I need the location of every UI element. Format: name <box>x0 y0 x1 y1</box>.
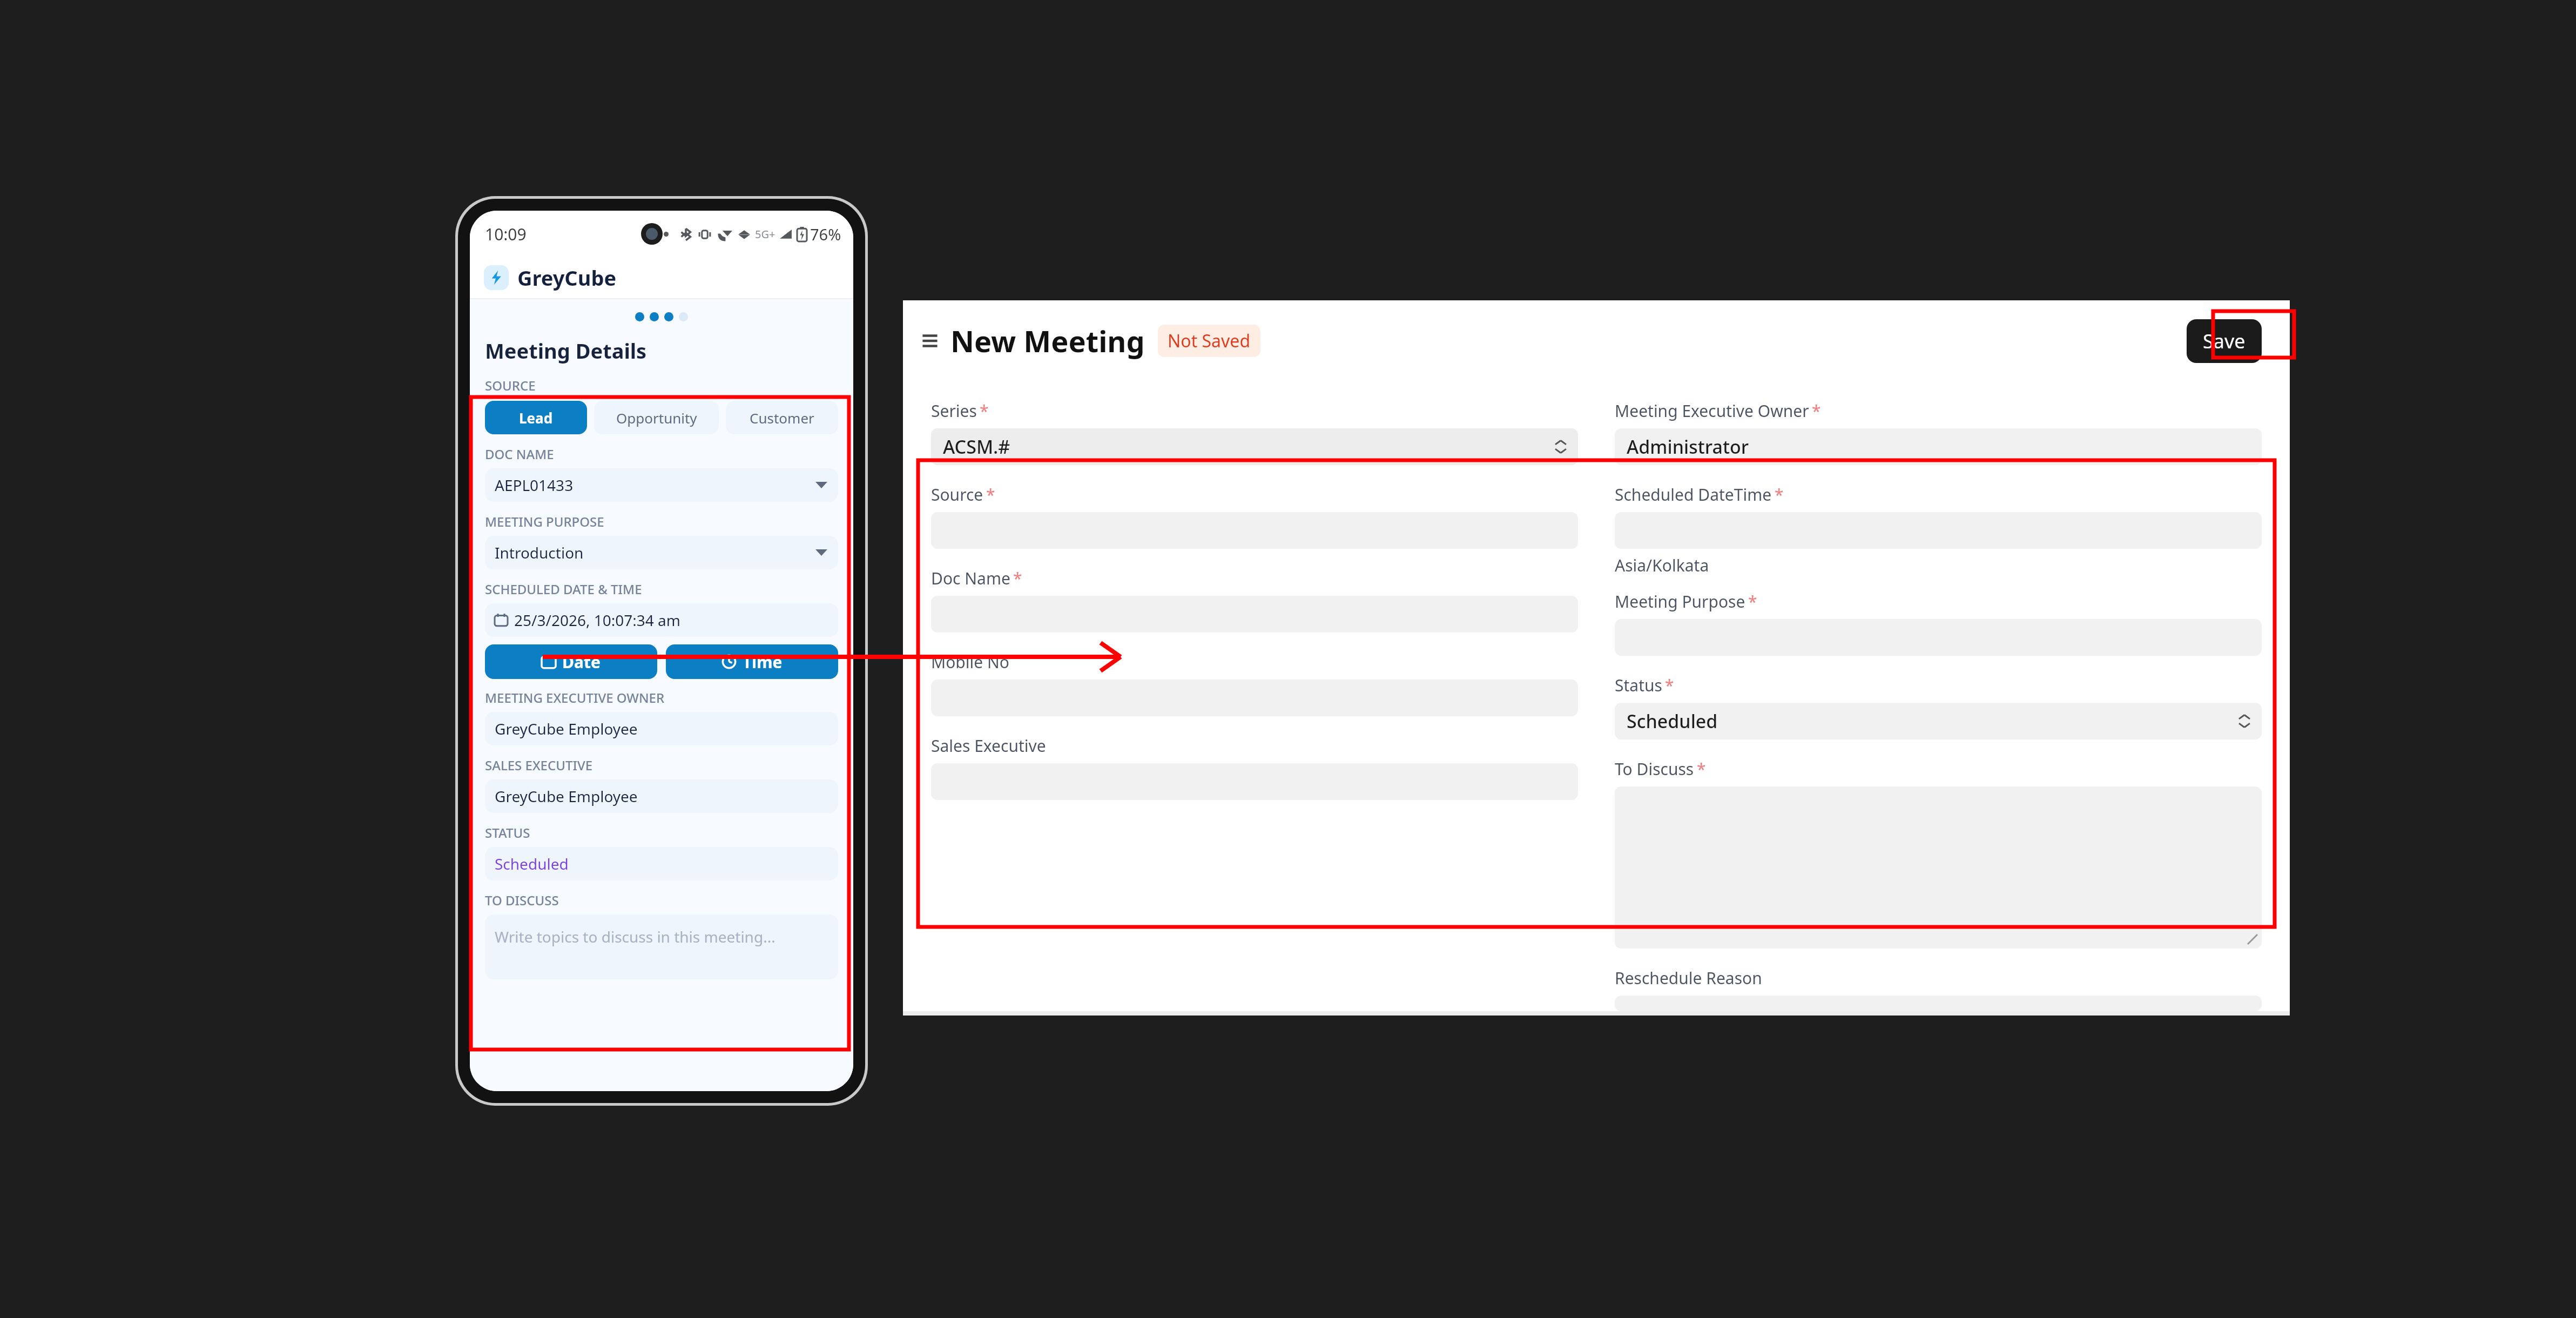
button[interactable]: Customer <box>726 401 838 434</box>
button[interactable]: Opportunity <box>594 401 719 434</box>
staticText: Save <box>2203 328 2245 354</box>
staticText: Date <box>562 651 601 673</box>
staticText: * <box>1665 674 1674 696</box>
staticText: To Discuss <box>1615 758 1694 780</box>
staticText: Introduction <box>495 542 584 563</box>
staticText: * <box>1812 400 1821 422</box>
staticText: Lead <box>519 408 553 427</box>
staticText: * <box>1013 567 1022 589</box>
staticText: Meeting Details <box>485 337 647 365</box>
button[interactable]: Menu <box>918 329 942 353</box>
staticText: 25/3/2026, 10:07:34 am <box>514 610 681 630</box>
staticText: Source <box>931 483 983 506</box>
staticText: * <box>1748 590 1757 613</box>
button[interactable]: Introduction <box>485 536 838 569</box>
staticText: Sales Executive <box>931 735 1046 757</box>
staticText: MEETING PURPOSE <box>485 513 604 530</box>
staticText: Meeting Purpose <box>1615 590 1745 613</box>
staticText: * <box>986 483 995 506</box>
staticText: SOURCE <box>485 376 536 394</box>
staticText: Scheduled <box>1627 709 1718 734</box>
staticText: DOC NAME <box>485 445 554 463</box>
button[interactable]: Scheduled <box>485 847 838 880</box>
staticText: Status <box>1615 674 1662 696</box>
staticText: Customer <box>750 408 814 427</box>
button[interactable]: 25/3/2026, 10:07:34 am <box>485 603 838 637</box>
button[interactable]: Save <box>2187 319 2262 363</box>
staticText: * <box>980 400 989 422</box>
staticText: Opportunity <box>616 408 697 427</box>
staticText: Write topics to discuss in this meeting.… <box>495 926 776 947</box>
staticText: Mobile No <box>931 651 1009 673</box>
staticText: Scheduled DateTime <box>1615 483 1772 506</box>
button[interactable]: GreyCube Employee <box>485 712 838 745</box>
staticText: 5G+ <box>755 227 776 241</box>
staticText: Asia/Kolkata <box>1615 554 1709 576</box>
button[interactable]: AEPL01433 <box>485 468 838 502</box>
staticText: GreyCube <box>517 264 617 292</box>
button[interactable]: ACSM.# <box>931 428 1578 465</box>
button[interactable]: GreyCube logo <box>484 265 509 290</box>
button[interactable]: Scheduled <box>1615 703 2262 739</box>
staticText: MEETING EXECUTIVE OWNER <box>485 689 665 707</box>
staticText: 76% <box>810 224 841 245</box>
button[interactable]: Date <box>485 644 657 679</box>
staticText: ACSM.# <box>943 434 1010 459</box>
staticText: * <box>1775 483 1784 506</box>
staticText: SCHEDULED DATE & TIME <box>485 580 642 598</box>
staticText: Doc Name <box>931 567 1010 589</box>
button[interactable]: Administrator <box>1615 428 2262 465</box>
button[interactable]: Write topics to discuss in this meeting.… <box>485 914 838 979</box>
staticText: STATUS <box>485 824 530 842</box>
staticText: * <box>1697 758 1706 780</box>
staticText: Reschedule Reason <box>1615 967 1762 989</box>
button[interactable]: GreyCube Employee <box>485 779 838 813</box>
staticText: Not Saved <box>1168 329 1251 353</box>
staticText: Meeting Executive Owner <box>1615 400 1809 422</box>
button[interactable]: Not Saved <box>1158 325 1260 357</box>
staticText: Series <box>931 400 977 422</box>
staticText: AEPL01433 <box>495 475 574 495</box>
staticText: GreyCube Employee <box>495 718 638 739</box>
button[interactable]: Lead <box>485 401 587 434</box>
staticText: 10:09 <box>485 223 527 245</box>
staticText: New Meeting <box>950 321 1145 361</box>
staticText: SALES EXECUTIVE <box>485 756 593 774</box>
staticText: Administrator <box>1627 434 1749 459</box>
button[interactable]: Time <box>666 644 838 679</box>
staticText: Time <box>743 651 783 673</box>
button[interactable] <box>1615 786 2262 949</box>
staticText: TO DISCUSS <box>485 891 559 909</box>
staticText: Scheduled <box>495 853 569 874</box>
staticText: GreyCube Employee <box>495 786 638 806</box>
